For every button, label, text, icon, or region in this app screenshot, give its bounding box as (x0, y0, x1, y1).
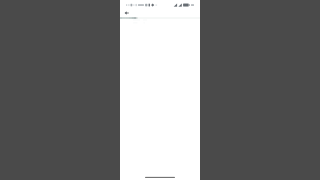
button[interactable]: Back (120, 9, 134, 17)
